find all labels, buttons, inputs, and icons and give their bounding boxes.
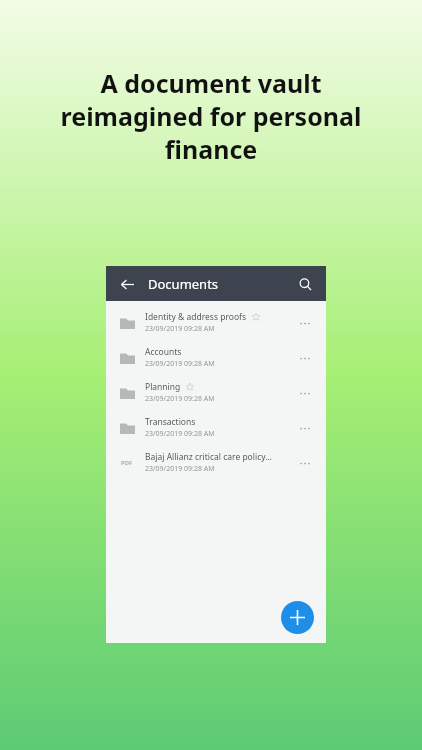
button[interactable]: Accounts: [106, 340, 326, 375]
button[interactable]: Planning: [106, 375, 326, 410]
staticText: 23/09/2019 09:28 AM: [145, 464, 215, 474]
staticText: 23/09/2019 09:28 AM: [145, 324, 215, 334]
button[interactable]: Transactions: [106, 410, 326, 445]
staticText: Identity & address proofs: [145, 311, 247, 323]
staticText: 23/09/2019 09:28 AM: [145, 359, 215, 369]
staticText: PDF: [121, 459, 133, 467]
button[interactable]: PDF: [106, 445, 326, 480]
button[interactable]: More options: [295, 381, 315, 405]
button[interactable]: Search: [295, 274, 315, 294]
staticText: Bajaj Allianz critical care policy…: [145, 451, 272, 463]
button[interactable]: More options: [295, 451, 315, 475]
button[interactable]: More options: [295, 416, 315, 440]
staticText: 23/09/2019 09:28 AM: [145, 429, 215, 439]
button[interactable]: More options: [295, 346, 315, 370]
staticText: Transactions: [145, 416, 196, 428]
button[interactable]: Add document: [281, 601, 314, 634]
staticText: Documents: [148, 275, 219, 293]
button[interactable]: More options: [295, 311, 315, 335]
staticText: A document vault reimagined for personal…: [34, 66, 388, 166]
button[interactable]: Identity & address proofs: [106, 305, 326, 340]
button[interactable]: Back: [118, 275, 136, 293]
staticText: Accounts: [145, 346, 182, 358]
staticText: 23/09/2019 09:28 AM: [145, 394, 215, 404]
staticText: Planning: [145, 381, 181, 393]
